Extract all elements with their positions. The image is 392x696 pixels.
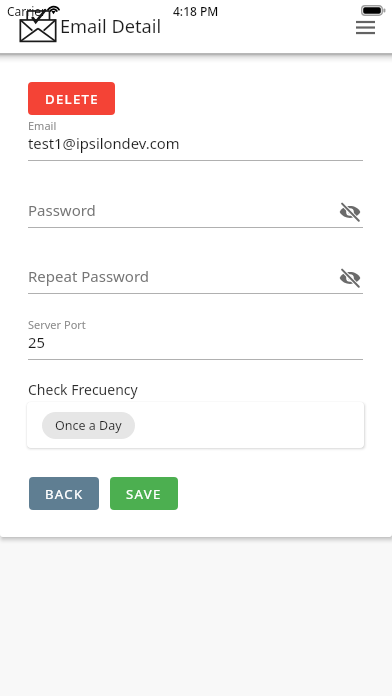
staticText: Password: [28, 200, 337, 220]
staticText: DELETE: [45, 90, 99, 108]
staticText: SAVE: [126, 485, 162, 503]
staticText: Once a Day: [55, 417, 122, 434]
button[interactable]: SAVE: [110, 477, 178, 510]
staticText: Email Detail: [60, 14, 162, 39]
button[interactable]: Toggle password visibility: [337, 265, 363, 291]
staticText: Carrier: [7, 3, 47, 19]
staticText: BACK: [45, 485, 84, 503]
staticText: Email: [28, 118, 57, 133]
staticText: Check Frecuency: [28, 380, 138, 399]
staticText: Repeat Password: [28, 266, 337, 286]
staticText: 25: [28, 332, 45, 352]
staticText: Server Port: [28, 317, 86, 332]
button[interactable]: Once a Day: [42, 412, 135, 439]
button[interactable]: Toggle password visibility: [337, 199, 363, 225]
button[interactable]: BACK: [29, 477, 99, 510]
staticText: test1@ipsilondev.com: [28, 133, 180, 153]
staticText: 4:18 PM: [173, 3, 219, 19]
button[interactable]: Menu: [347, 9, 383, 45]
button[interactable]: DELETE: [28, 82, 115, 115]
